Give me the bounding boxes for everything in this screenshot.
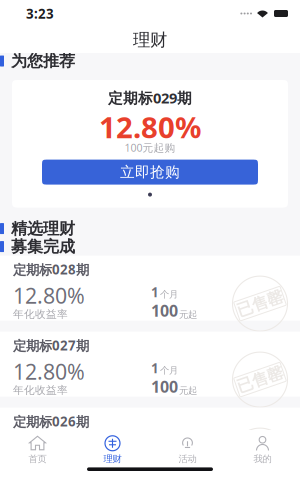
staticText: 年化收益率 — [13, 308, 68, 321]
staticText: 12.80% — [13, 281, 85, 310]
staticText: 首页 — [28, 453, 46, 465]
button[interactable]: 立即抢购 — [42, 160, 258, 185]
staticText: 已售罄 — [236, 446, 284, 465]
staticText: 立即抢购 — [120, 163, 180, 181]
staticText: 100 — [151, 376, 178, 397]
staticText: 元起 — [179, 385, 197, 396]
staticText: 定期标027期 — [13, 337, 89, 354]
button[interactable]: 已售罄 — [0, 408, 300, 473]
staticText: 已售罄 — [236, 370, 284, 389]
staticText: 100 — [151, 452, 178, 473]
staticText: 年化收益率 — [13, 384, 68, 397]
staticText: 理财 — [103, 453, 121, 465]
staticText: 100元起购 — [124, 140, 175, 155]
button[interactable]: 首页 — [0, 433, 75, 466]
button[interactable]: 我的 — [225, 433, 300, 466]
staticText: 1 — [151, 283, 159, 301]
staticText: 年化收益率 — [13, 460, 68, 473]
staticText: 定期标029期 — [108, 88, 192, 107]
staticText: 个月 — [160, 288, 178, 300]
staticText: 12.80% — [99, 107, 201, 146]
staticText: 我的 — [253, 453, 271, 465]
staticText: 12.80% — [13, 433, 85, 462]
staticText: 理财 — [133, 29, 167, 51]
staticText: 定期标026期 — [13, 413, 89, 430]
button[interactable]: 已售罄 — [0, 256, 300, 321]
staticText: 个月 — [160, 364, 178, 376]
staticText: 精选理财 — [11, 219, 75, 238]
staticText: 1 — [151, 359, 159, 377]
staticText: 活动 — [178, 453, 196, 465]
staticText: 已售罄 — [236, 294, 284, 313]
button[interactable]: 理财 — [75, 433, 150, 466]
staticText: 定期标028期 — [13, 261, 89, 278]
staticText: 100 — [151, 300, 178, 321]
staticText: 募集完成 — [11, 237, 75, 256]
staticText: 元起 — [179, 461, 197, 472]
staticText: 3:23 — [26, 5, 54, 22]
button[interactable]: 已售罄 — [0, 332, 300, 397]
staticText: 元起 — [179, 309, 197, 320]
button[interactable]: 活动 — [150, 433, 225, 466]
staticText: 12.80% — [13, 357, 85, 386]
staticText: 为您推荐 — [11, 51, 75, 71]
